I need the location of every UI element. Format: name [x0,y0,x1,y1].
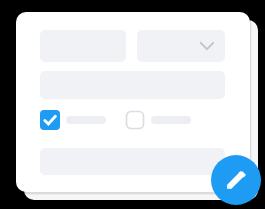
button[interactable]: Select option [137,30,225,62]
button[interactable] [40,148,225,175]
button[interactable] [16,12,250,192]
button[interactable]: Checked checkbox [40,110,60,130]
button[interactable]: Edit [211,155,261,205]
button[interactable]: Unchecked checkbox [125,110,145,130]
